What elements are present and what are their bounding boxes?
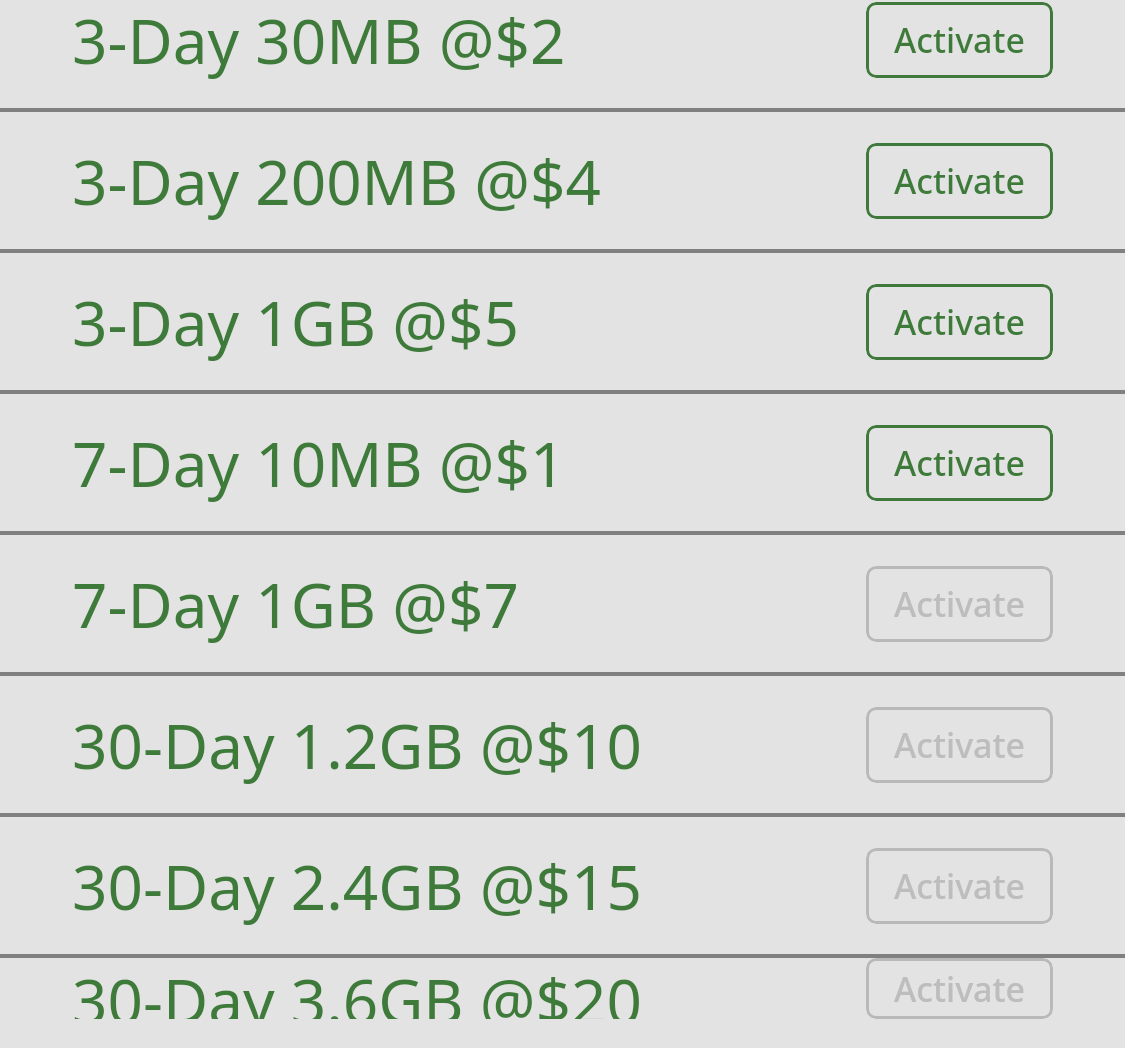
- staticText: 30-Day 2.4GB @$15: [72, 844, 642, 928]
- button[interactable]: Activate: [866, 2, 1053, 78]
- button: Activate: [866, 958, 1053, 1019]
- button[interactable]: 7-Day 10MB @$1: [0, 394, 1125, 531]
- button[interactable]: Activate: [866, 143, 1053, 219]
- button: 30-Day 1.2GB @$10: [0, 676, 1125, 813]
- button[interactable]: Activate: [866, 284, 1053, 360]
- staticText: Activate: [894, 863, 1026, 909]
- button[interactable]: 3-Day 1GB @$5: [0, 253, 1125, 390]
- button: 30-Day 2.4GB @$15: [0, 817, 1125, 954]
- staticText: Activate: [894, 581, 1026, 627]
- staticText: 7-Day 1GB @$7: [72, 562, 519, 646]
- staticText: Activate: [894, 440, 1026, 486]
- staticText: 3-Day 30MB @$2: [72, 0, 566, 82]
- staticText: Activate: [894, 17, 1026, 63]
- staticText: 30-Day 3.6GB @$20: [72, 958, 642, 1019]
- staticText: 3-Day 200MB @$4: [72, 139, 601, 223]
- button: 30-Day 3.6GB @$20: [0, 958, 1125, 1019]
- staticText: 3-Day 1GB @$5: [72, 280, 519, 364]
- staticText: Activate: [894, 299, 1026, 345]
- button[interactable]: 3-Day 30MB @$2: [0, 0, 1125, 108]
- button: Activate: [866, 848, 1053, 924]
- button: Activate: [866, 707, 1053, 783]
- staticText: 30-Day 1.2GB @$10: [72, 703, 642, 787]
- staticText: Activate: [894, 966, 1026, 1012]
- staticText: Activate: [894, 722, 1026, 768]
- staticText: 7-Day 10MB @$1: [72, 421, 566, 505]
- button: Activate: [866, 566, 1053, 642]
- button: 7-Day 1GB @$7: [0, 535, 1125, 672]
- button[interactable]: Activate: [866, 425, 1053, 501]
- staticText: Activate: [894, 158, 1026, 204]
- button[interactable]: 3-Day 200MB @$4: [0, 112, 1125, 249]
